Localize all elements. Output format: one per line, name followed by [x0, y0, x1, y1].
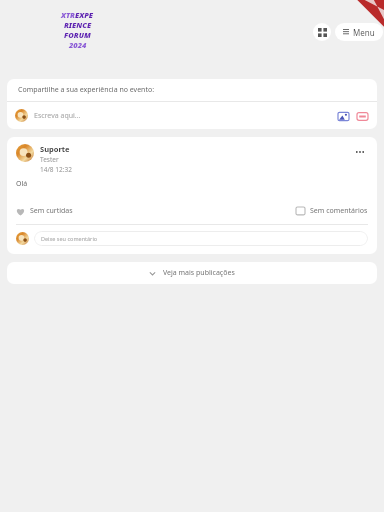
staticText: XTR — [61, 10, 75, 20]
button[interactable]: Adicionar imagem — [336, 109, 350, 123]
staticText: Escreva aqui... — [34, 111, 81, 121]
staticText: FORUM — [64, 30, 91, 40]
staticText: Compartilhe a sua experiência no evento: — [18, 85, 155, 95]
button[interactable]: Sem curtidas — [16, 206, 73, 216]
button[interactable]: Adicionar GIF — [355, 109, 369, 123]
button[interactable]: Deixe seu comentário — [34, 231, 368, 246]
staticText: 2024 — [69, 40, 87, 50]
staticText: Menu — [353, 27, 375, 38]
staticText: 14/8 12:32 — [40, 165, 72, 174]
staticText: Sem comentários — [310, 206, 368, 216]
staticText: Sem curtidas — [30, 206, 73, 216]
button[interactable]: Menu — [335, 23, 383, 41]
button[interactable]: Veja mais publicações — [7, 262, 377, 284]
staticText: Deixe seu comentário — [41, 235, 98, 242]
button[interactable]: Escreva aqui... — [7, 102, 377, 129]
staticText: EXPE — [75, 10, 94, 20]
staticText: Olá — [16, 179, 28, 189]
staticText: RIENCE — [64, 20, 92, 30]
button[interactable]: Sem comentários — [296, 206, 368, 216]
button[interactable]: Mais opções — [352, 144, 368, 160]
staticText: Veja mais publicações — [163, 268, 235, 278]
staticText: Tester — [40, 155, 59, 164]
staticText: Suporte — [40, 144, 70, 154]
button[interactable]: Apps — [313, 23, 331, 41]
